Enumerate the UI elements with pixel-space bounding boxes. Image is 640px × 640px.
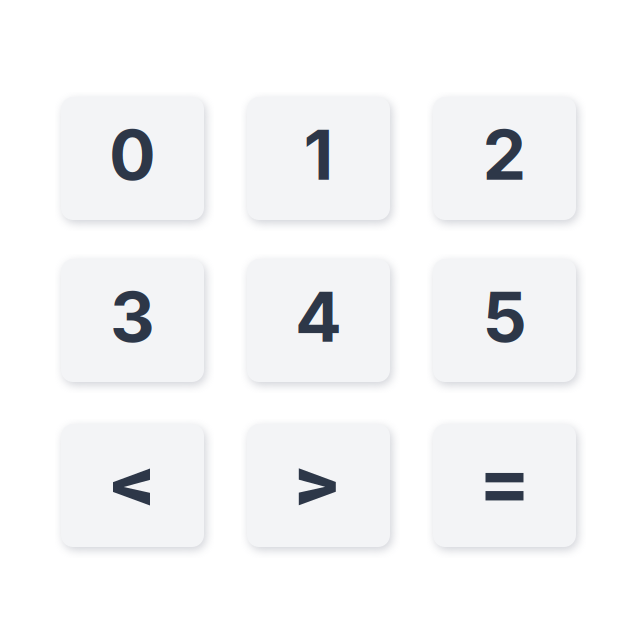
staticText: 0 <box>109 113 156 196</box>
button[interactable]: Greater than <box>247 424 390 547</box>
staticText: 4 <box>295 275 342 358</box>
staticText: 5 <box>482 275 526 358</box>
button[interactable]: 4 <box>247 259 390 382</box>
button[interactable]: Less than <box>61 424 204 547</box>
button[interactable]: 1 <box>247 97 390 220</box>
button[interactable]: Equals <box>433 424 576 547</box>
staticText: 1 <box>303 113 333 196</box>
button[interactable]: 5 <box>433 259 576 382</box>
button[interactable]: 3 <box>61 259 204 382</box>
button[interactable]: 0 <box>61 97 204 220</box>
staticText: 2 <box>482 113 526 196</box>
staticText: 3 <box>110 275 155 358</box>
button[interactable]: 2 <box>433 97 576 220</box>
